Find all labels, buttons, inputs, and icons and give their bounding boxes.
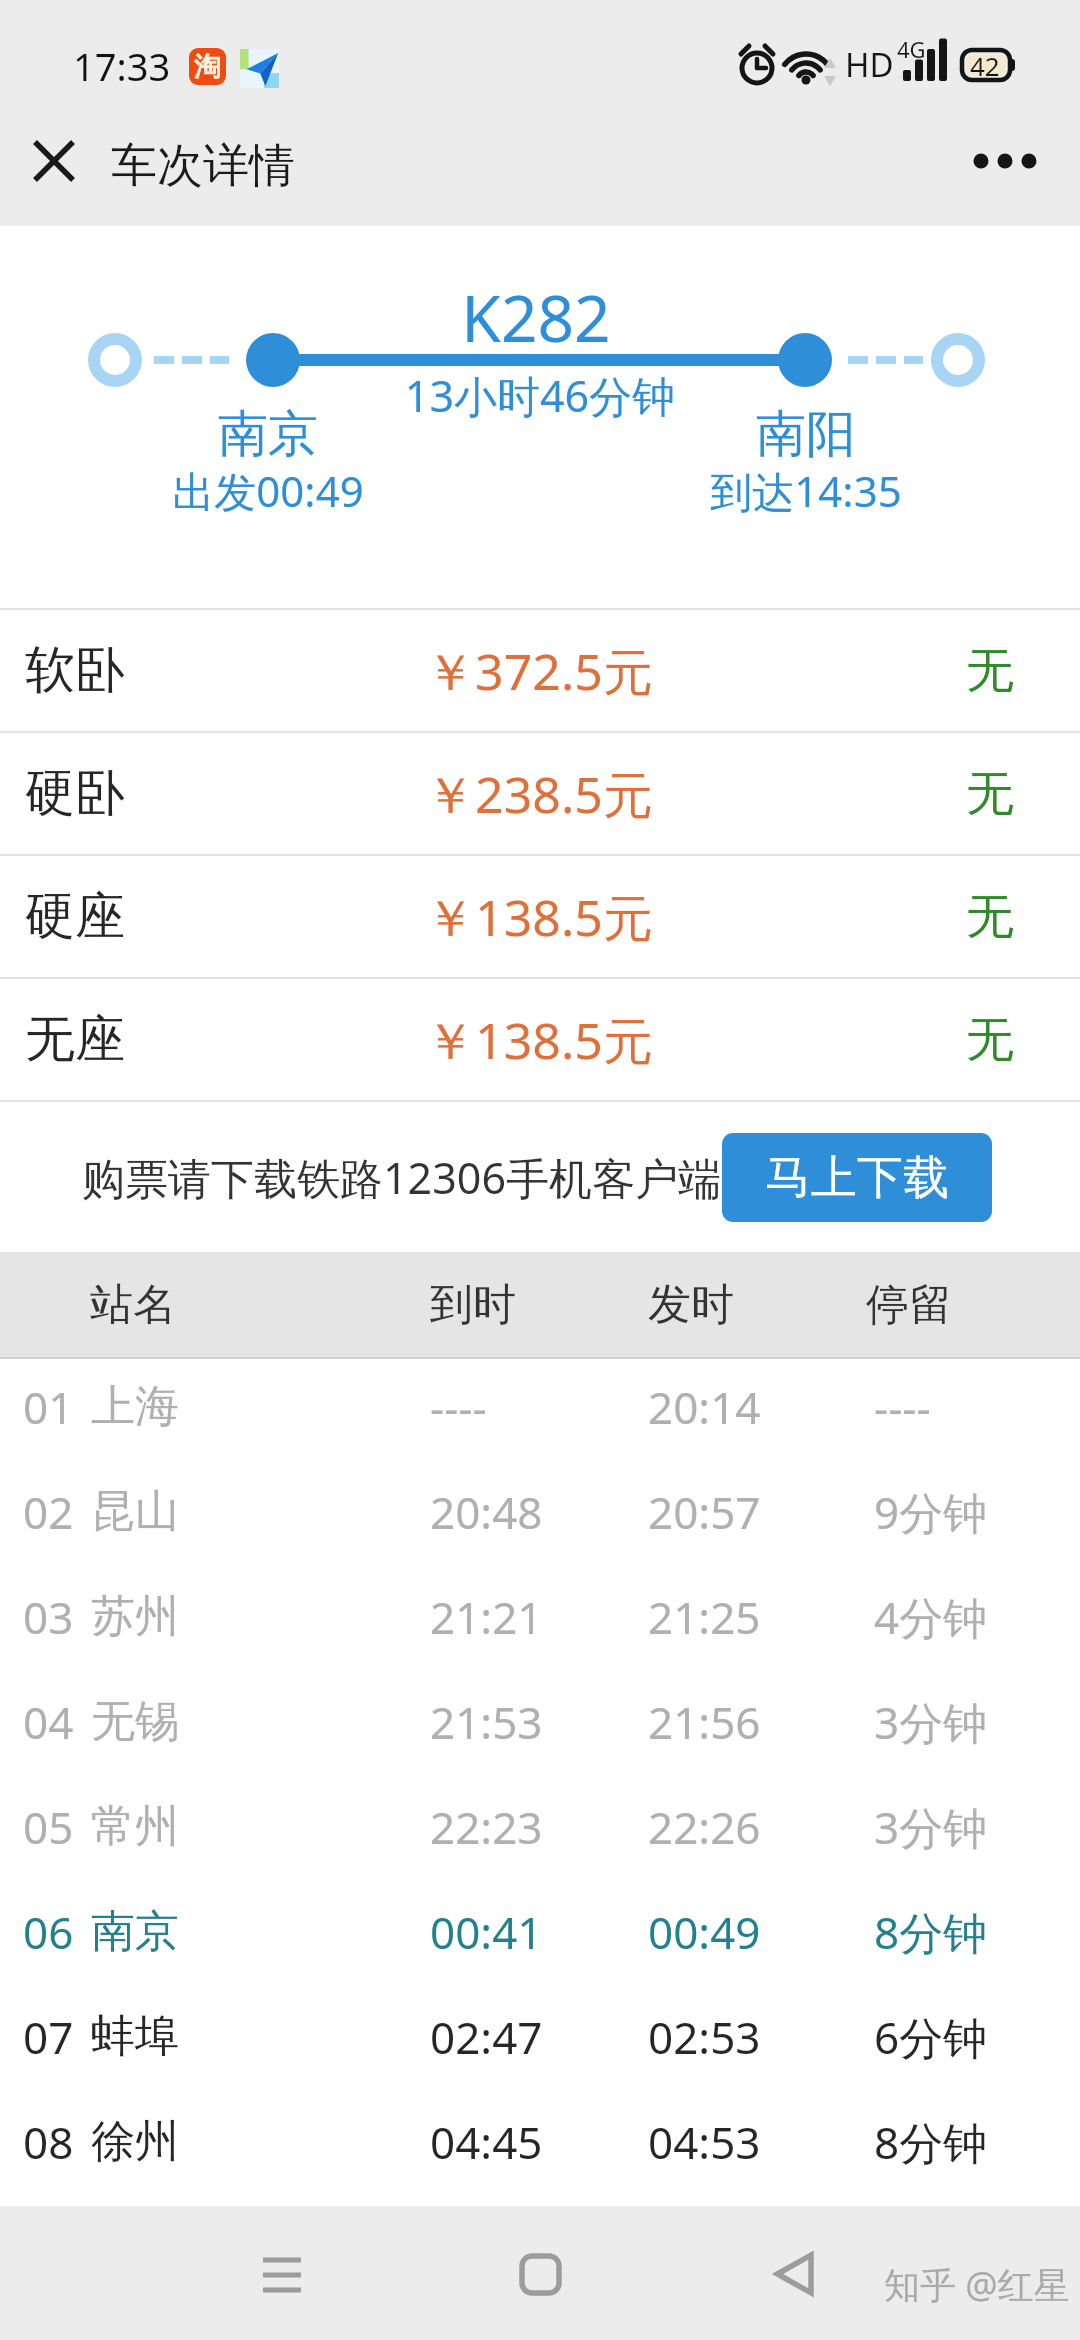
staticText: 无 [890,1010,1080,1070]
button[interactable]: 02 [0,1464,1080,1569]
staticText: ￥138.5元 [389,1006,689,1074]
staticText: 3分钟 [874,1797,988,1857]
staticText: 00:41 [430,1902,543,1962]
staticText: 出发00:49 [68,462,468,519]
staticText: 无 [890,641,1080,701]
staticText: 20:57 [648,1482,761,1542]
staticText: 无座 [25,1008,125,1071]
staticText: 06 [23,1902,74,1962]
button[interactable]: 无座 [0,979,1080,1100]
staticText: 购票请下载铁路12306手机客户端 [82,1148,722,1207]
staticText: 04:45 [430,2112,543,2172]
staticText: 4G [897,34,926,64]
staticText: 6分钟 [874,2007,988,2067]
button[interactable]: Back [755,2234,835,2314]
staticText: 3分钟 [874,1692,988,1752]
staticText: 硬卧 [25,762,125,825]
staticText: 02 [23,1482,74,1542]
staticText: ￥238.5元 [389,760,689,828]
staticText: 8分钟 [874,2112,988,2172]
staticText: 22:23 [430,1797,543,1857]
staticText: 淘 [194,50,221,84]
staticText: 8分钟 [874,1902,988,1962]
staticText: 无锡 [91,1694,179,1749]
button[interactable]: 05 [0,1779,1080,1884]
staticText: HD [845,42,894,87]
staticText: 07 [23,2007,74,2067]
staticText: ￥372.5元 [389,637,689,705]
staticText: 9分钟 [874,1482,988,1542]
button[interactable]: Recent apps [242,2234,322,2314]
button[interactable]: 软卧 [0,610,1080,731]
button[interactable]: Close [15,122,93,200]
staticText: 蚌埠 [91,2009,179,2064]
staticText: 4分钟 [874,1587,988,1647]
staticText: 无 [890,887,1080,947]
staticText: 软卧 [25,639,125,702]
staticText: 17:33 [73,40,171,92]
button[interactable]: 马上下载 [722,1133,992,1222]
button[interactable]: 04 [0,1674,1080,1779]
staticText: 上海 [91,1379,179,1434]
staticText: 05 [23,1797,74,1857]
staticText: K282 [386,274,686,361]
button[interactable]: 08 [0,2094,1080,2199]
staticText: 站名 [90,1278,176,1332]
staticText: 知乎 @红星 [884,2260,1070,2309]
staticText: 22:26 [648,1797,761,1857]
staticText: 苏州 [91,1589,179,1644]
staticText: 04:53 [648,2112,761,2172]
button[interactable]: More options [965,122,1045,202]
staticText: 21:21 [430,1587,543,1647]
staticText: 01 [23,1377,74,1437]
staticText: 02:47 [430,2007,543,2067]
staticText: ---- [430,1377,487,1437]
staticText: 21:25 [648,1587,761,1647]
staticText: 20:48 [430,1482,543,1542]
staticText: 昆山 [91,1484,179,1539]
button[interactable]: Home [500,2234,580,2314]
staticText: 42 [970,48,1000,83]
staticText: 到达14:35 [606,462,1006,519]
button[interactable]: 03 [0,1569,1080,1674]
staticText: 无 [890,764,1080,824]
staticText: 到时 [430,1278,516,1332]
staticText: 21:56 [648,1692,761,1752]
staticText: 车次详情 [111,137,295,195]
button[interactable]: 硬座 [0,856,1080,977]
staticText: ---- [874,1377,931,1437]
button[interactable]: 06 [0,1884,1080,1989]
staticText: 00:49 [648,1902,761,1962]
staticText: 08 [23,2112,74,2172]
staticText: 20:14 [648,1377,761,1437]
staticText: 常州 [91,1799,179,1854]
staticText: 04 [23,1692,74,1752]
staticText: 21:53 [430,1692,543,1752]
button[interactable]: 07 [0,1989,1080,2094]
staticText: 02:53 [648,2007,761,2067]
staticText: 硬座 [25,885,125,948]
staticText: ￥138.5元 [389,883,689,951]
staticText: 南京 [68,403,468,466]
staticText: 徐州 [91,2114,179,2169]
staticText: 马上下载 [765,1149,949,1207]
staticText: 发时 [648,1278,734,1332]
staticText: 停留 [866,1278,952,1332]
staticText: 南阳 [606,403,1006,466]
staticText: 13小时46分钟 [290,366,790,425]
staticText: 03 [23,1587,74,1647]
staticText: 南京 [91,1904,179,1959]
button[interactable]: 硬卧 [0,733,1080,854]
button[interactable]: 01 [0,1359,1080,1464]
